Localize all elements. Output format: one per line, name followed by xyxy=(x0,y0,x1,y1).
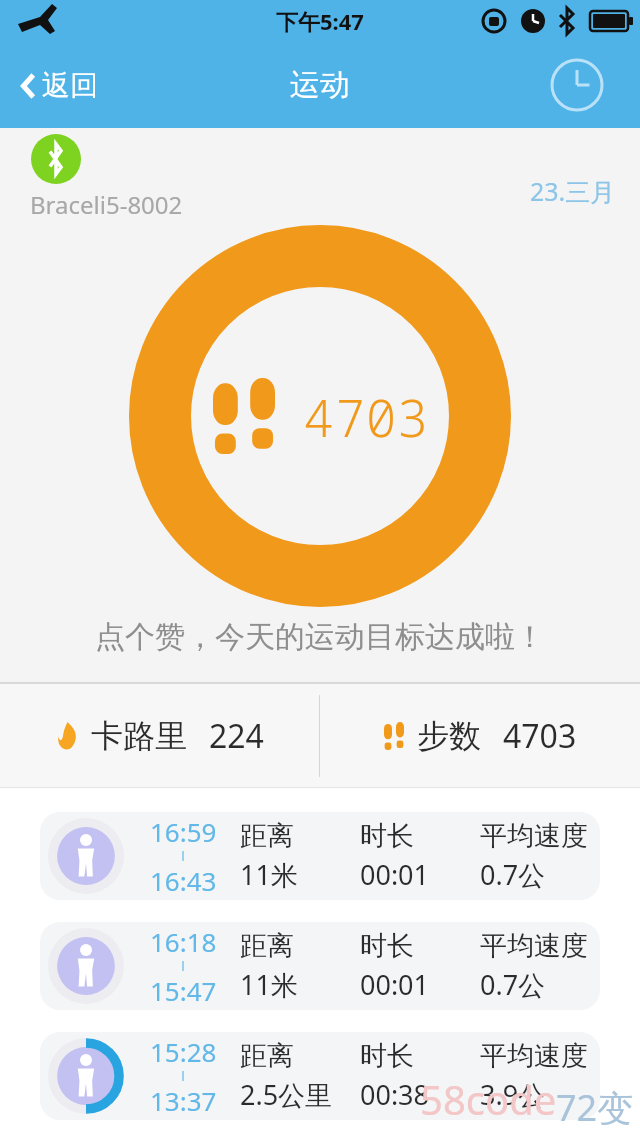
staticText: 11米 xyxy=(240,966,298,1003)
staticText: 2.5公里 xyxy=(240,1076,333,1113)
staticText: 平均速度 xyxy=(480,1039,588,1073)
staticText: 00:01 xyxy=(360,966,430,1003)
button[interactable]: 16:18 xyxy=(40,922,600,1010)
button[interactable]: 16:59 xyxy=(40,812,600,900)
staticText: 13:37 xyxy=(150,1083,217,1118)
staticText: 距离 xyxy=(240,929,294,963)
staticText: 00:38 xyxy=(360,1076,430,1113)
staticText: 0.7公里/... xyxy=(480,856,600,893)
staticText: 时长 xyxy=(360,929,414,963)
staticText: 16:18 xyxy=(150,924,217,959)
staticText: 0.7公里/... xyxy=(480,966,600,1003)
staticText: 00:01 xyxy=(360,856,430,893)
staticText: 15:47 xyxy=(150,973,217,1008)
button[interactable]: 返回 xyxy=(12,60,106,111)
button[interactable]: History xyxy=(550,58,604,112)
staticText: 卡路里 xyxy=(91,716,187,756)
staticText: 距离 xyxy=(240,1039,294,1073)
staticText: 15:28 xyxy=(150,1034,217,1069)
staticText: 58code xyxy=(420,1072,557,1126)
staticText: 4703 xyxy=(503,714,577,758)
staticText: 运动 xyxy=(290,66,350,104)
button[interactable]: 15:28 xyxy=(40,1032,600,1120)
staticText: 点个赞，今天的运动目标达成啦！ xyxy=(95,618,545,656)
staticText: 23.三月 xyxy=(530,174,616,208)
staticText: 距离 xyxy=(240,819,294,853)
staticText: 4703 xyxy=(303,381,428,452)
staticText: 72变 xyxy=(556,1083,634,1132)
button[interactable]: 步数 xyxy=(320,684,640,788)
staticText: 16:43 xyxy=(150,863,217,898)
staticText: 时长 xyxy=(360,1039,414,1073)
button[interactable]: 卡路里 xyxy=(0,684,319,788)
staticText: 返回 xyxy=(42,68,98,103)
staticText: 步数 xyxy=(417,716,481,756)
staticText: 下午5:47 xyxy=(276,6,364,36)
staticText: 平均速度 xyxy=(480,929,588,963)
staticText: 平均速度 xyxy=(480,819,588,853)
staticText: 224 xyxy=(209,714,264,758)
staticText: Braceli5-8002 xyxy=(30,188,183,221)
staticText: 时长 xyxy=(360,819,414,853)
staticText: 3.9公里/... xyxy=(480,1076,600,1113)
staticText: 11米 xyxy=(240,856,298,893)
staticText: 16:59 xyxy=(150,814,217,849)
